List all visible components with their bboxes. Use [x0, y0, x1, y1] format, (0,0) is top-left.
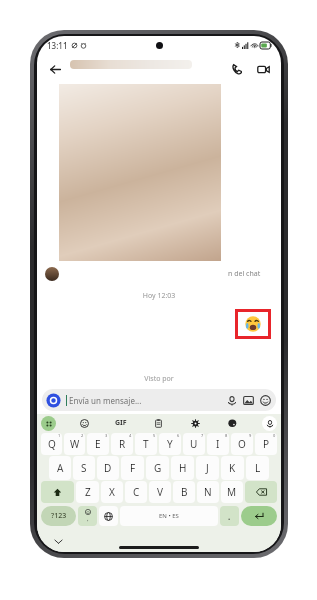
staticText: Z — [85, 485, 91, 499]
staticText: A — [57, 461, 64, 475]
staticText: . — [228, 511, 231, 522]
staticText: T — [143, 437, 149, 451]
staticText: F — [130, 461, 136, 475]
staticText: G — [154, 461, 162, 475]
staticText: X — [109, 485, 115, 499]
button[interactable]: Q — [41, 433, 62, 455]
staticText: Visto por — [37, 374, 281, 384]
staticText: S — [81, 461, 87, 475]
staticText: Y — [167, 437, 173, 451]
button[interactable]: EN • ES — [120, 506, 218, 526]
button[interactable]: Video call — [252, 58, 274, 80]
button[interactable]: C — [125, 481, 147, 503]
button[interactable]: Voice message — [223, 392, 240, 409]
staticText: 7 — [201, 433, 204, 438]
button[interactable]: ?123 — [41, 506, 76, 526]
button[interactable]: Shift — [41, 481, 74, 503]
staticText: M — [227, 485, 237, 499]
staticText: H — [179, 461, 187, 475]
staticText: ?123 — [51, 511, 67, 521]
staticText: GIF — [115, 418, 127, 428]
button[interactable]: B — [173, 481, 195, 503]
staticText: 1 — [58, 433, 61, 438]
staticText: Hoy 12:03 — [37, 291, 281, 301]
staticText: E — [95, 437, 101, 451]
button[interactable]: Enter — [241, 506, 277, 526]
button[interactable]: Settings — [188, 416, 203, 431]
button[interactable]: P — [255, 433, 277, 455]
button[interactable]: Hide keyboard — [51, 534, 65, 548]
staticText: 4 — [129, 433, 132, 438]
button[interactable]: W — [64, 433, 85, 455]
button[interactable]: Theme — [225, 416, 240, 431]
button[interactable]: M — [221, 481, 243, 503]
staticText: K — [229, 461, 236, 475]
button[interactable]: Change language — [99, 506, 118, 526]
button[interactable]: V — [149, 481, 171, 503]
button[interactable]: N — [197, 481, 219, 503]
button[interactable]: T — [135, 433, 157, 455]
button[interactable]: L — [246, 456, 269, 480]
staticText: D — [104, 461, 112, 475]
staticText: 13:11 — [47, 40, 68, 51]
button[interactable]: D — [97, 456, 119, 480]
button[interactable] — [238, 312, 268, 336]
button[interactable]: A — [49, 456, 71, 480]
button[interactable]: Clipboard — [151, 416, 166, 431]
button[interactable]: Gallery — [240, 392, 257, 409]
button[interactable]: X — [101, 481, 123, 503]
button[interactable]: Stickers — [257, 392, 274, 409]
staticText: n del chat — [228, 269, 261, 279]
staticText: 3 — [105, 433, 108, 438]
staticText: U — [190, 437, 198, 451]
button[interactable]: Voice call — [226, 58, 248, 80]
button[interactable]: I — [207, 433, 229, 455]
button[interactable]: Camera — [42, 389, 276, 411]
staticText: C — [133, 485, 140, 499]
staticText: V — [157, 485, 163, 499]
staticText: P — [263, 437, 270, 451]
staticText: N — [204, 485, 212, 499]
staticText: I — [216, 437, 220, 451]
staticText: L — [255, 461, 261, 475]
button[interactable]: Keyboard menu — [41, 416, 56, 431]
button[interactable]: Backspace — [245, 481, 277, 503]
button[interactable]: Voice input — [262, 416, 277, 431]
staticText: R — [119, 437, 126, 451]
button[interactable]: GIF — [113, 416, 129, 430]
staticText: W — [70, 437, 80, 451]
staticText: 0 — [273, 433, 276, 438]
button[interactable]: Y — [159, 433, 181, 455]
staticText: , — [87, 515, 89, 523]
button[interactable]: O — [231, 433, 253, 455]
staticText: Envía un mensaje... — [69, 395, 142, 406]
staticText: O — [238, 437, 246, 451]
button[interactable]: U — [183, 433, 205, 455]
button[interactable]: . — [220, 506, 239, 526]
staticText: 2 — [81, 433, 84, 438]
button[interactable]: Z — [76, 481, 99, 503]
button[interactable]: Camera — [44, 391, 62, 409]
staticText: 9 — [249, 433, 252, 438]
staticText: Q — [48, 437, 56, 451]
button[interactable]: G — [146, 456, 169, 480]
button[interactable]: S — [73, 456, 95, 480]
staticText: 6 — [177, 433, 180, 438]
button[interactable]: R — [111, 433, 133, 455]
staticText: 8 — [225, 433, 228, 438]
button[interactable]: Back — [44, 58, 66, 80]
button[interactable]: K — [221, 456, 244, 480]
staticText: B — [181, 485, 188, 499]
button[interactable]: F — [121, 456, 144, 480]
staticText: J — [206, 461, 209, 475]
button[interactable]: Emoji — [77, 416, 92, 431]
staticText: 5 — [153, 433, 156, 438]
button[interactable]: J — [196, 456, 219, 480]
staticText: EN • ES — [159, 512, 179, 520]
button[interactable]: H — [171, 456, 194, 480]
button[interactable]: E — [87, 433, 109, 455]
button[interactable]: Emoji comma — [78, 506, 97, 526]
